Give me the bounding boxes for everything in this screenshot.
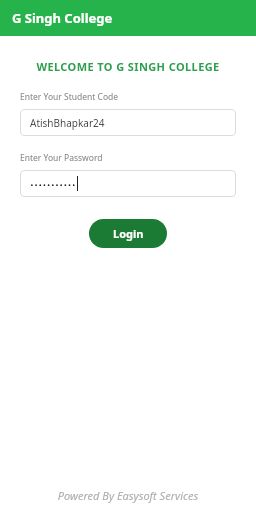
staticText: AtishBhapkar24: [30, 116, 105, 130]
staticText: Enter Your Password: [20, 152, 103, 164]
button[interactable]: Login: [89, 219, 167, 248]
staticText: Powered By Easysoft Services: [0, 488, 256, 503]
staticText: WELCOME TO G SINGH COLLEGE: [0, 59, 256, 74]
staticText: G Singh College: [12, 9, 113, 27]
button[interactable]: AtishBhapkar24: [20, 109, 236, 136]
staticText: Login: [113, 226, 144, 241]
staticText: Enter Your Student Code: [20, 91, 119, 103]
button[interactable]: [20, 170, 236, 197]
